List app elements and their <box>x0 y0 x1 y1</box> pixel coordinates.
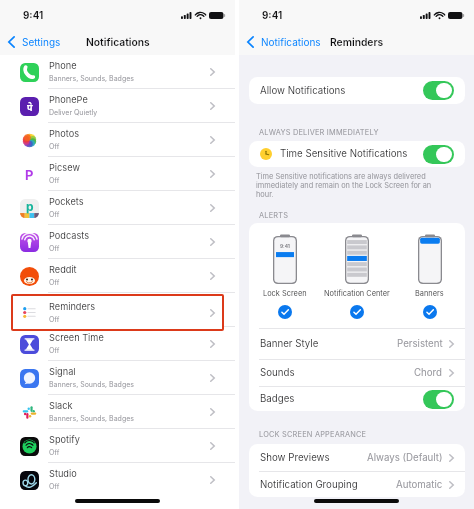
staticText: Notifications <box>86 36 150 48</box>
staticText: Notification Grouping <box>260 479 358 491</box>
staticText: पे <box>27 101 33 113</box>
staticText: Signal <box>49 366 76 377</box>
button[interactable]: Toggle <box>423 145 454 164</box>
staticText: P <box>25 167 34 183</box>
staticText: Off <box>49 482 60 490</box>
button[interactable]: Banners <box>415 236 444 319</box>
button[interactable]: Settings <box>0 28 65 55</box>
staticText: Badges <box>260 393 295 405</box>
staticText: Pockets <box>49 196 84 207</box>
staticText: LOCK SCREEN APPEARANCE <box>259 430 367 439</box>
staticText: Picsew <box>49 162 80 173</box>
button[interactable]: Slack <box>0 395 235 429</box>
button[interactable]: Toggle <box>423 81 454 100</box>
staticText: Banner Style <box>260 338 319 350</box>
staticText: Chord <box>414 367 443 379</box>
staticText: Reddit <box>49 264 77 275</box>
button[interactable]: Notifications <box>239 28 325 55</box>
staticText: Persistent <box>397 338 443 350</box>
button[interactable]: Notification Center <box>324 236 390 319</box>
staticText: Photos <box>49 128 80 139</box>
staticText: Reminders <box>49 298 96 309</box>
staticText: Automatic <box>396 479 443 491</box>
staticText: Reminders <box>330 36 384 48</box>
button[interactable]: Phone <box>0 55 235 89</box>
staticText: Settings <box>22 36 61 48</box>
staticText: Banners, Sounds, Badges <box>49 414 134 422</box>
staticText: Off <box>49 315 60 323</box>
button[interactable]: Podcasts <box>0 225 235 259</box>
button[interactable]: Banner Style <box>249 329 465 359</box>
staticText: Deliver Quietly <box>49 108 98 116</box>
button[interactable]: पे <box>0 89 235 123</box>
button[interactable]: 9:41 <box>263 236 307 319</box>
staticText: Banners, Sounds, Badges <box>49 380 134 388</box>
button[interactable]: Reminders <box>0 293 235 327</box>
staticText: Off <box>49 346 60 354</box>
button[interactable]: Signal <box>0 361 235 395</box>
button[interactable]: Toggle <box>423 390 454 409</box>
staticText: Off <box>49 176 60 184</box>
staticText: p <box>26 199 34 214</box>
button[interactable]: p <box>0 191 235 225</box>
staticText: ALWAYS DELIVER IMMEDIATELY <box>259 128 379 137</box>
staticText: Off <box>49 278 60 286</box>
button[interactable]: Time Sensitive Notifications <box>249 141 465 167</box>
button[interactable]: Show Previews <box>249 444 465 471</box>
staticText: Spotify <box>49 434 80 445</box>
staticText: Reminders <box>49 301 96 312</box>
button[interactable]: Notification Grouping <box>249 472 465 497</box>
staticText: Sounds <box>260 367 295 379</box>
button[interactable]: Screen Time <box>0 327 235 361</box>
staticText: Show Previews <box>260 452 330 464</box>
staticText: Notification Center <box>324 289 390 298</box>
staticText: Notifications <box>261 36 321 48</box>
staticText: 9:41 <box>280 243 290 249</box>
staticText: Time Sensitive notifications are always … <box>256 172 438 199</box>
button[interactable]: Badges <box>249 387 465 411</box>
button[interactable]: Studio <box>0 463 235 497</box>
button[interactable]: Photos <box>0 123 235 157</box>
staticText: Phone <box>49 60 77 71</box>
staticText: Time Sensitive Notifications <box>280 148 408 160</box>
staticText: Screen Time <box>49 332 104 343</box>
staticText: Off <box>49 244 60 252</box>
staticText: Allow Notifications <box>260 85 346 97</box>
staticText: Studio <box>49 468 77 479</box>
staticText: 9:41 <box>23 10 44 22</box>
button[interactable]: Sounds <box>249 360 465 386</box>
staticText: Podcasts <box>49 230 90 241</box>
staticText: Slack <box>49 400 73 411</box>
staticText: Off <box>49 448 60 456</box>
staticText: PhonePe <box>49 94 88 105</box>
staticText: Lock Screen <box>263 289 307 298</box>
staticText: Banners <box>415 289 444 298</box>
staticText: 9:41 <box>262 10 283 22</box>
button[interactable]: Allow Notifications <box>249 77 465 104</box>
staticText: Off <box>49 210 60 218</box>
staticText: Always (Default) <box>367 452 443 464</box>
button[interactable]: Reddit <box>0 259 235 293</box>
staticText: Off <box>49 142 60 150</box>
button[interactable]: Spotify <box>0 429 235 463</box>
button[interactable]: P <box>0 157 235 191</box>
staticText: ALERTS <box>259 211 289 220</box>
staticText: Banners, Sounds, Badges <box>49 74 134 82</box>
staticText: Off <box>49 312 60 320</box>
